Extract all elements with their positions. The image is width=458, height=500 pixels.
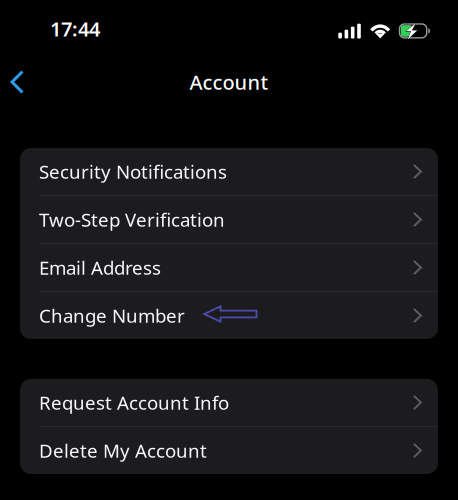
staticText: Email Address (39, 255, 161, 280)
staticText: Two-Step Verification (39, 207, 225, 232)
staticText: Change Number (39, 303, 185, 328)
button[interactable]: Security Notifications (20, 148, 438, 195)
button[interactable]: Two-Step Verification (20, 196, 438, 243)
staticText: 17:44 (50, 15, 100, 42)
staticText: Request Account Info (39, 390, 229, 415)
staticText: Delete My Account (39, 438, 207, 463)
button[interactable]: Change Number (20, 292, 438, 339)
staticText: Security Notifications (39, 159, 227, 184)
button[interactable]: Back (0, 61, 42, 103)
staticText: Account (189, 69, 268, 95)
button[interactable]: Email Address (20, 244, 438, 291)
button[interactable]: Request Account Info (20, 379, 438, 426)
button[interactable]: Delete My Account (20, 427, 438, 474)
